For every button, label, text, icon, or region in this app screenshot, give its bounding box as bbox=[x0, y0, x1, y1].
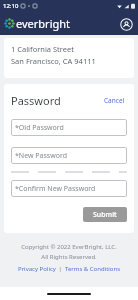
staticText: San Francisco, CA 94111 bbox=[11, 56, 96, 66]
staticText: Privacy Policy bbox=[18, 265, 56, 273]
staticText: Submit bbox=[93, 210, 117, 220]
staticText: *New Password bbox=[15, 151, 67, 161]
staticText: *Confirm New Password bbox=[15, 184, 96, 194]
staticText: Copyright © 2022 EverBright, LLC. bbox=[21, 243, 117, 251]
staticText: Cancel bbox=[104, 96, 125, 105]
button[interactable]: Account bbox=[118, 16, 134, 32]
staticText: | bbox=[57, 265, 64, 273]
staticText: 1 California Street bbox=[11, 44, 74, 54]
staticText: everbright bbox=[16, 16, 70, 31]
staticText: Terms & Conditions bbox=[65, 265, 121, 273]
button[interactable]: Submit bbox=[83, 207, 127, 222]
button[interactable]: Terms & Conditions bbox=[64, 264, 122, 274]
button[interactable]: *Confirm New Password bbox=[11, 180, 127, 197]
button[interactable]: Privacy Policy bbox=[17, 264, 57, 274]
button[interactable]: 1 California Street bbox=[4, 38, 134, 78]
button[interactable]: Cancel bbox=[102, 95, 127, 106]
staticText: Password bbox=[11, 93, 61, 108]
staticText: *Old Password bbox=[15, 123, 64, 133]
button[interactable]: *Old Password bbox=[11, 119, 127, 136]
staticText: All Rights Reserved. bbox=[41, 253, 97, 261]
button[interactable]: Home gesture bbox=[47, 293, 91, 295]
button[interactable]: *New Password bbox=[11, 147, 127, 164]
button[interactable]: everbright bbox=[5, 16, 70, 31]
staticText: 12:10 bbox=[3, 2, 19, 10]
